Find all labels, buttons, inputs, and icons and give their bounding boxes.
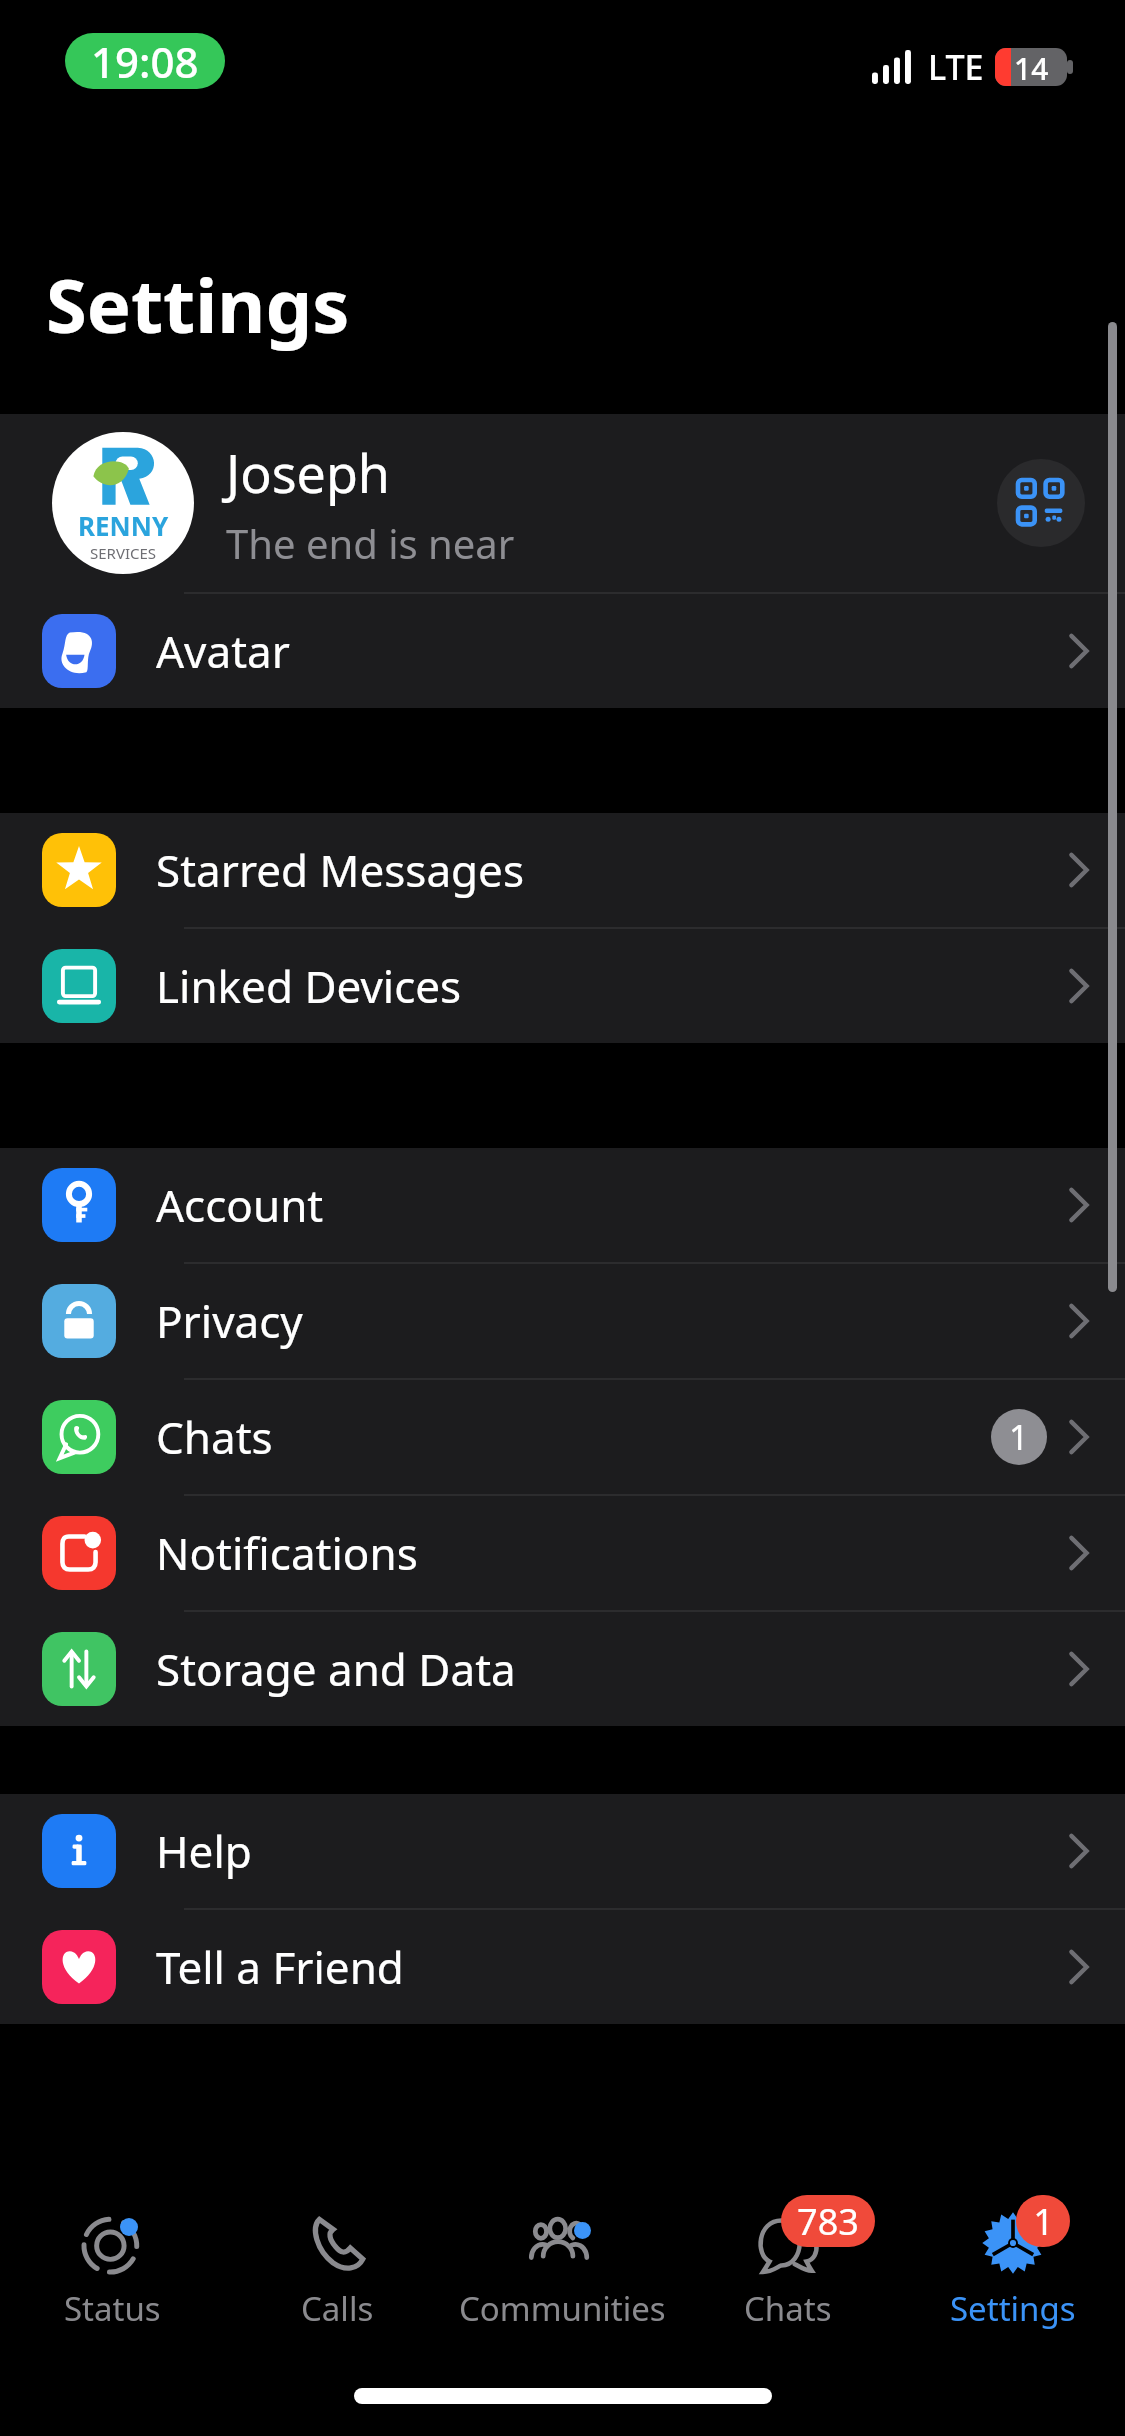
button[interactable]: Starred Messages [0,813,1125,927]
button[interactable]: Account [0,1148,1125,1262]
staticText: SERVICES [90,543,157,562]
staticText: The end is near [226,516,515,570]
button[interactable]: Linked Devices [0,929,1125,1043]
staticText: Account [156,1175,1069,1235]
staticText: Joseph [226,437,391,508]
staticText: 14 [1014,48,1049,86]
staticText: 1 [1009,1414,1029,1460]
button[interactable]: 783 [675,2176,900,2372]
staticText: Chats [744,2286,832,2331]
button[interactable]: Privacy [0,1264,1125,1378]
button[interactable]: Status [0,2176,225,2372]
staticText: Settings [950,2286,1076,2331]
button[interactable]: Chats [0,1380,1125,1494]
staticText: Chats [156,1407,991,1467]
button[interactable]: Help [0,1794,1125,1908]
staticText: 1 [1033,2197,1054,2246]
staticText: 783 [797,2197,859,2246]
button[interactable]: Communities [450,2176,675,2372]
button[interactable]: Tell a Friend [0,1910,1125,2024]
staticText: Communities [459,2286,666,2331]
staticText: Notifications [156,1523,1069,1583]
button[interactable]: Notifications [0,1496,1125,1610]
staticText: Help [156,1821,1069,1881]
staticText: Settings [46,254,350,355]
staticText: RENNY [78,508,169,543]
staticText: Tell a Friend [156,1937,1069,1997]
staticText: Linked Devices [156,956,1069,1016]
button[interactable]: Avatar [0,594,1125,708]
staticText: Storage and Data [156,1639,1069,1699]
button[interactable]: 1 [900,2176,1125,2372]
staticText: Avatar [156,621,1069,681]
button[interactable]: Storage and Data [0,1612,1125,1726]
staticText: Calls [301,2286,374,2331]
staticText: LTE [928,44,984,90]
button[interactable]: QR code [997,459,1085,547]
staticText: Privacy [156,1291,1069,1351]
staticText: 19:08 [91,33,199,89]
button[interactable]: RENNY [0,414,1125,592]
staticText: Status [64,2286,161,2331]
button[interactable]: Calls [225,2176,450,2372]
staticText: Starred Messages [156,840,1069,900]
